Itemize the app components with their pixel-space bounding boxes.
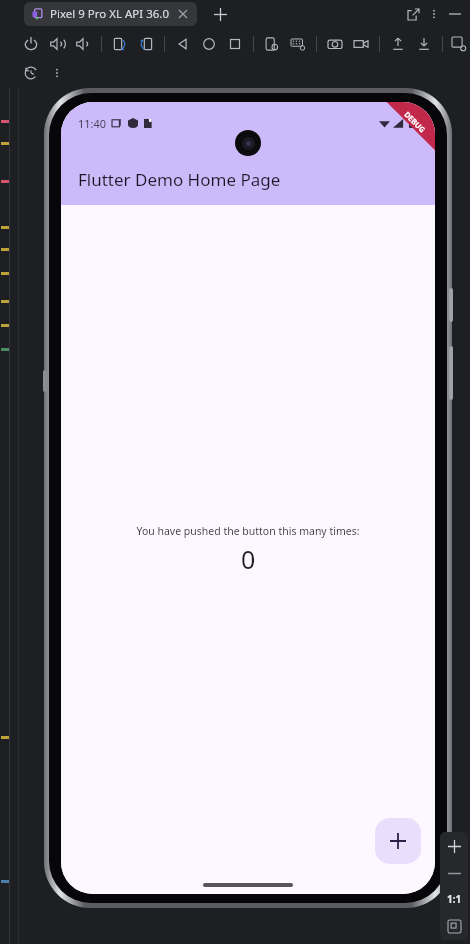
staticText: 1:1: [447, 892, 462, 906]
staticText: DEBUG: [402, 109, 428, 135]
button[interactable]: More: [44, 60, 70, 86]
button[interactable]: Zoom out: [441, 860, 467, 886]
button[interactable]: Power: [18, 31, 44, 57]
button[interactable]: Overview: [222, 31, 248, 57]
button[interactable]: Record screen: [348, 31, 374, 57]
button[interactable]: Minimize: [444, 3, 466, 25]
button[interactable]: Actual size: [441, 886, 467, 912]
staticText: Flutter Demo Home Page: [78, 168, 281, 191]
button[interactable]: Upload: [385, 31, 411, 57]
staticText: 0: [241, 542, 256, 576]
button[interactable]: History: [18, 60, 44, 86]
button[interactable]: Snapshots: [448, 31, 470, 57]
button[interactable]: Close tab: [177, 8, 189, 20]
button[interactable]: Open in new window: [402, 3, 424, 25]
button[interactable]: Increment: [375, 818, 421, 864]
button[interactable]: Back: [170, 31, 196, 57]
button[interactable]: Keyboard: [285, 31, 311, 57]
button[interactable]: More options: [424, 4, 444, 24]
button[interactable]: Screenshot: [322, 31, 348, 57]
button[interactable]: Volume down: [70, 31, 96, 57]
button[interactable]: Pixel 9 Pro XL API 36.0: [24, 2, 197, 26]
button[interactable]: Zoom in: [440, 832, 468, 860]
button[interactable]: Device settings: [259, 31, 285, 57]
button[interactable]: New tab: [208, 2, 232, 26]
button[interactable]: Rotate left: [107, 31, 133, 57]
staticText: You have pushed the button this many tim…: [136, 524, 360, 538]
staticText: 11:40: [78, 116, 107, 131]
button[interactable]: Volume up: [44, 31, 70, 57]
button[interactable]: Home: [196, 31, 222, 57]
button[interactable]: Fit to window: [440, 912, 468, 940]
staticText: Pixel 9 Pro XL API 36.0: [50, 6, 169, 22]
button[interactable]: Rotate right: [133, 31, 159, 57]
button[interactable]: Download: [411, 31, 437, 57]
